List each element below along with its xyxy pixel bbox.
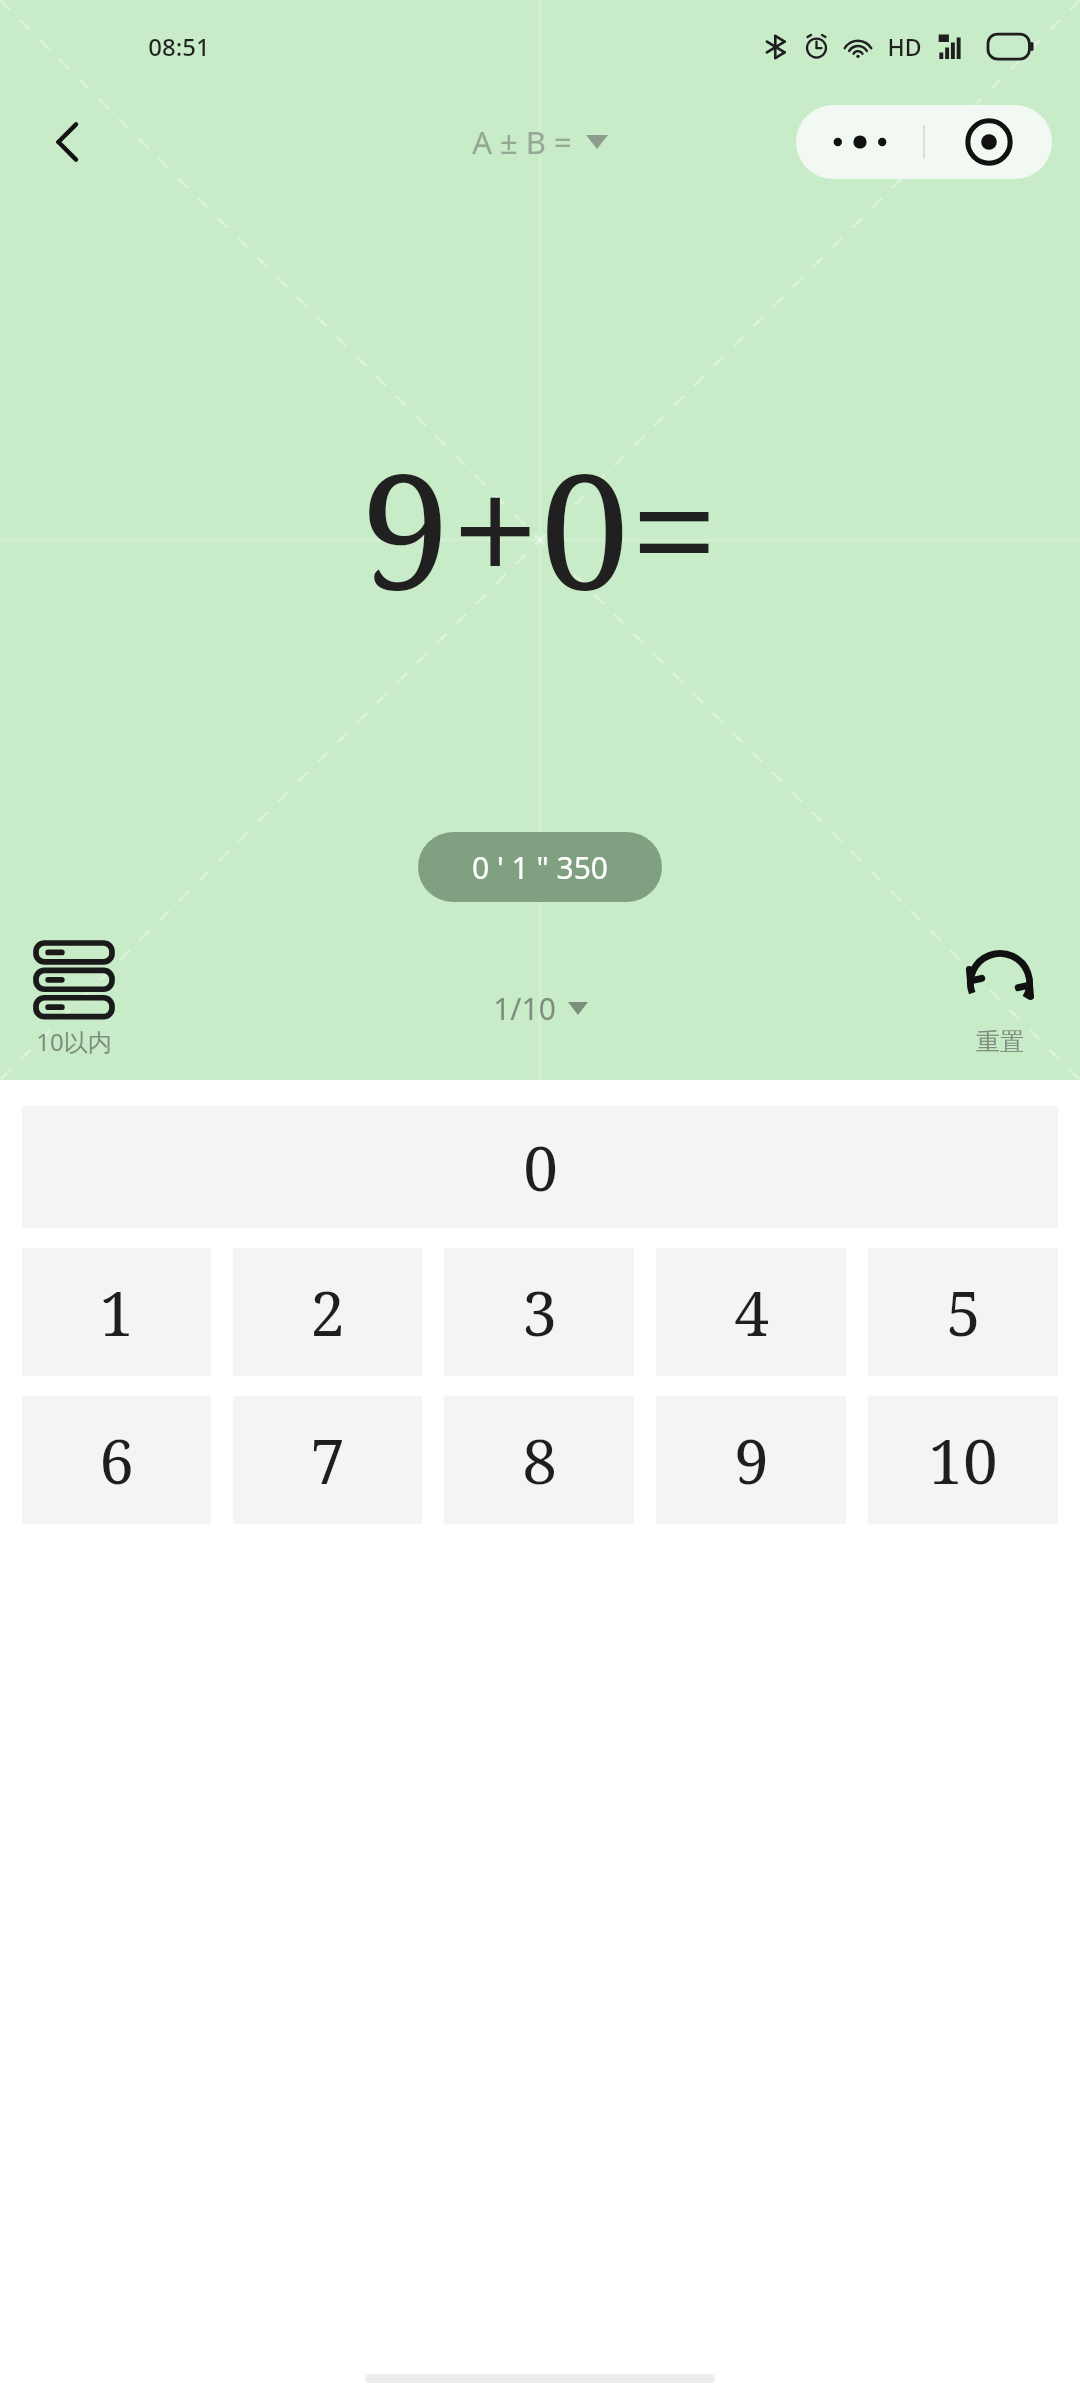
staticText: 9+0=: [361, 418, 719, 636]
button[interactable]: 9: [656, 1396, 846, 1524]
button[interactable]: 2: [233, 1248, 422, 1376]
staticText: 1/10: [493, 988, 556, 1029]
staticText: 0 ' 1 " 350: [472, 847, 608, 888]
button[interactable]: 10以内: [36, 943, 112, 1058]
button[interactable]: Close mini program: [925, 105, 1052, 179]
button[interactable]: 6: [22, 1396, 211, 1524]
button[interactable]: 3: [444, 1248, 634, 1376]
button[interactable]: 7: [233, 1396, 422, 1524]
staticText: 08:51: [148, 30, 210, 63]
staticText: 0: [523, 1125, 558, 1209]
staticText: 1: [99, 1270, 134, 1354]
button[interactable]: More options: [796, 105, 923, 179]
button[interactable]: 重置: [960, 943, 1040, 1057]
staticText: 重置: [976, 1027, 1024, 1057]
staticText: 2: [310, 1270, 345, 1354]
button[interactable]: 8: [444, 1396, 634, 1524]
button[interactable]: Back: [30, 104, 106, 180]
staticText: A ± B =: [472, 121, 572, 163]
staticText: 10: [928, 1418, 998, 1502]
button[interactable]: 5: [868, 1248, 1058, 1376]
staticText: 7: [310, 1418, 345, 1502]
button[interactable]: 1/10: [493, 988, 588, 1029]
staticText: 5: [946, 1270, 981, 1354]
button[interactable]: 1: [22, 1248, 211, 1376]
staticText: 10以内: [36, 1025, 112, 1058]
button[interactable]: 0 ' 1 " 350: [418, 832, 662, 902]
button[interactable]: A ± B =: [472, 121, 608, 163]
staticText: 8: [522, 1418, 557, 1502]
button[interactable]: 10: [868, 1396, 1058, 1524]
staticText: 9: [734, 1418, 769, 1502]
staticText: 6: [99, 1418, 134, 1502]
staticText: 4: [734, 1270, 769, 1354]
staticText: 3: [522, 1270, 557, 1354]
button[interactable]: 0: [22, 1106, 1058, 1228]
staticText: HD: [887, 31, 922, 62]
button[interactable]: 4: [656, 1248, 846, 1376]
